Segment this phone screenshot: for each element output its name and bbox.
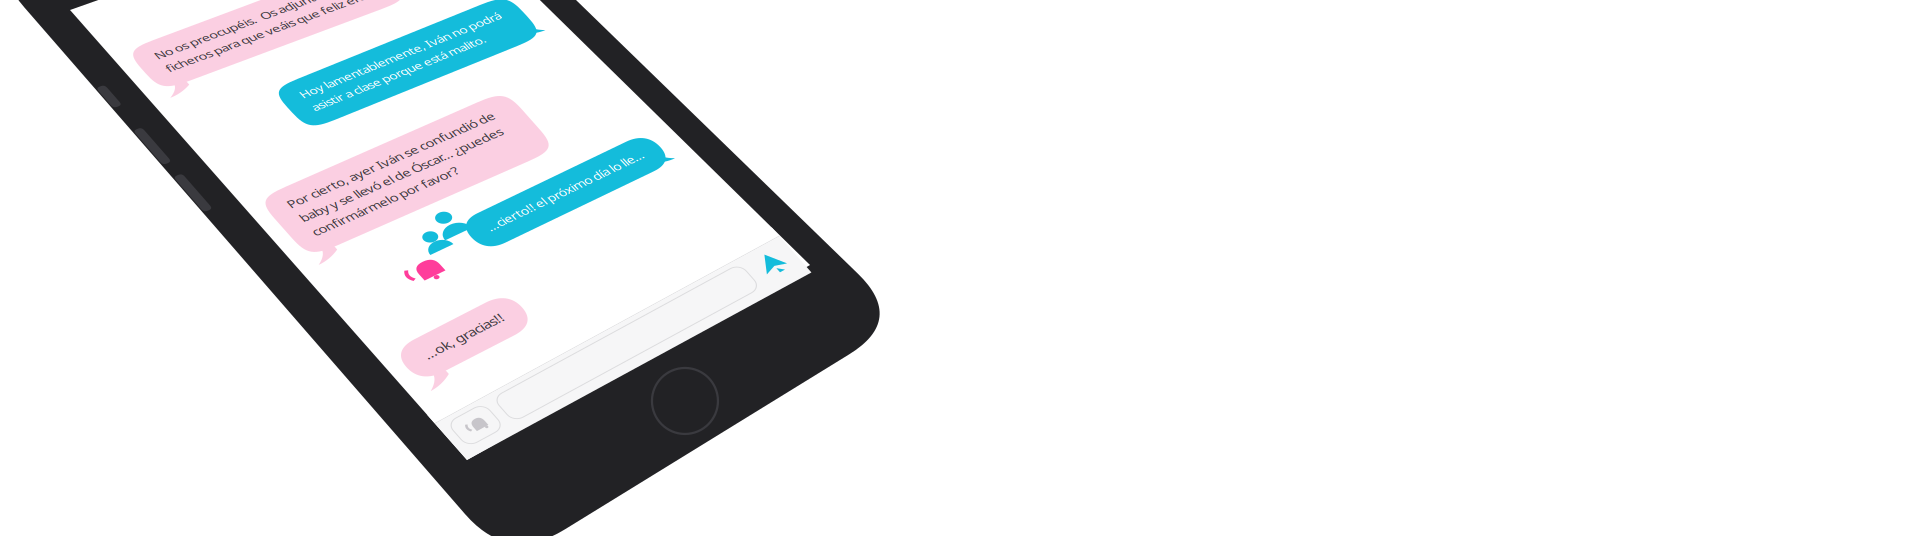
staticText: No os preocupéis. Os adjunto los <box>19 12 210 30</box>
button[interactable]: Send <box>338 19 366 47</box>
button[interactable]: …cierto!! el próximo día lo llevo <box>0 0 212 45</box>
button[interactable]: …ok, gracias!! <box>0 0 116 45</box>
button[interactable]: No os preocupéis. Os adjunto los <box>0 0 258 66</box>
button[interactable]: Hoy lamentablemente, Iván no podrá <box>0 0 258 66</box>
button[interactable]: Por cierto, ayer Iván se confundió de <box>0 0 258 87</box>
staticText: confirmármelo por favor? <box>19 53 170 71</box>
staticText: asistir a clase porque está malito. <box>19 33 208 50</box>
staticText: Por cierto, ayer Iván se confundió de <box>19 12 233 30</box>
staticText: Hoy lamentablemente, Iván no podrá <box>19 12 237 30</box>
staticText: baby y se llevó el de Óscar… ¿puedes <box>19 33 229 50</box>
staticText: …cierto!! el próximo día lo llevo <box>19 12 194 30</box>
button[interactable]: Notifications <box>9 17 49 49</box>
staticText: …ok, gracias!! <box>19 12 97 30</box>
staticText: ficheros para que veáis que feliz era <box>19 33 224 50</box>
